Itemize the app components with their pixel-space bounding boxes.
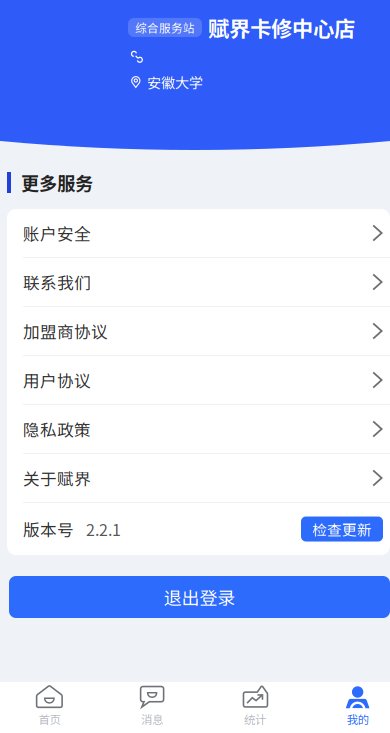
button[interactable]: 检查更新	[301, 516, 383, 541]
staticText: 账户安全	[23, 221, 91, 245]
button[interactable]: 加盟商协议	[7, 307, 390, 356]
staticText: 消息	[141, 711, 163, 727]
staticText: 退出登录	[163, 584, 235, 610]
button[interactable]: 我的	[306, 680, 390, 733]
button[interactable]: 账户安全	[7, 209, 390, 258]
button[interactable]: 拨打电话	[130, 50, 143, 63]
staticText: 2.2.1	[86, 517, 121, 541]
button[interactable]: 退出登录	[9, 576, 390, 618]
staticText: 版本号	[23, 517, 74, 541]
button[interactable]: 关于赋界	[7, 454, 390, 503]
staticText: 加盟商协议	[23, 319, 108, 343]
staticText: 安徽大学	[147, 72, 203, 92]
button[interactable]: 消息	[101, 680, 204, 733]
button[interactable]: 统计	[203, 680, 306, 733]
staticText: 统计	[244, 711, 266, 727]
staticText: 赋界卡修中心店	[208, 12, 355, 43]
button[interactable]: 联系我们	[7, 258, 390, 307]
button[interactable]: 用户协议	[7, 356, 390, 405]
staticText: 联系我们	[23, 270, 91, 294]
staticText: 我的	[347, 711, 369, 727]
staticText: 更多服务	[21, 169, 93, 196]
staticText: 关于赋界	[23, 466, 91, 490]
staticText: 综合服务站	[135, 19, 195, 36]
staticText: 用户协议	[23, 368, 91, 392]
staticText: 首页	[38, 711, 60, 727]
button[interactable]: 首页	[0, 680, 101, 733]
staticText: 隐私政策	[23, 417, 91, 441]
button[interactable]: 隐私政策	[7, 405, 390, 454]
staticText: 检查更新	[312, 518, 372, 540]
